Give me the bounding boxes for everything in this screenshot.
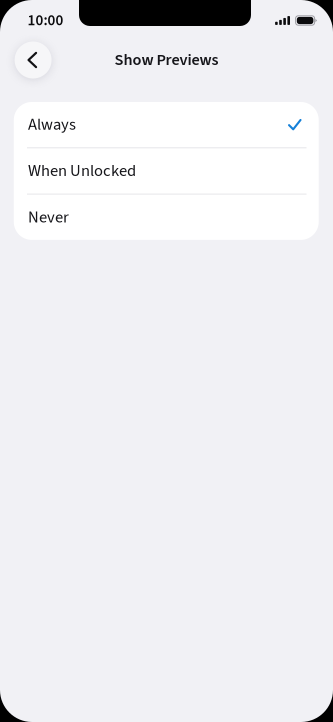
staticText: Show Previews xyxy=(114,48,218,72)
button[interactable]: When Unlocked xyxy=(14,148,319,194)
button[interactable]: Never xyxy=(14,195,319,240)
button[interactable]: Back xyxy=(15,41,52,78)
staticText: 10:00 xyxy=(27,10,63,31)
button[interactable]: Always xyxy=(14,102,319,147)
staticText: Always xyxy=(28,113,76,136)
staticText: When Unlocked xyxy=(28,159,136,183)
staticText: Never xyxy=(28,205,69,229)
